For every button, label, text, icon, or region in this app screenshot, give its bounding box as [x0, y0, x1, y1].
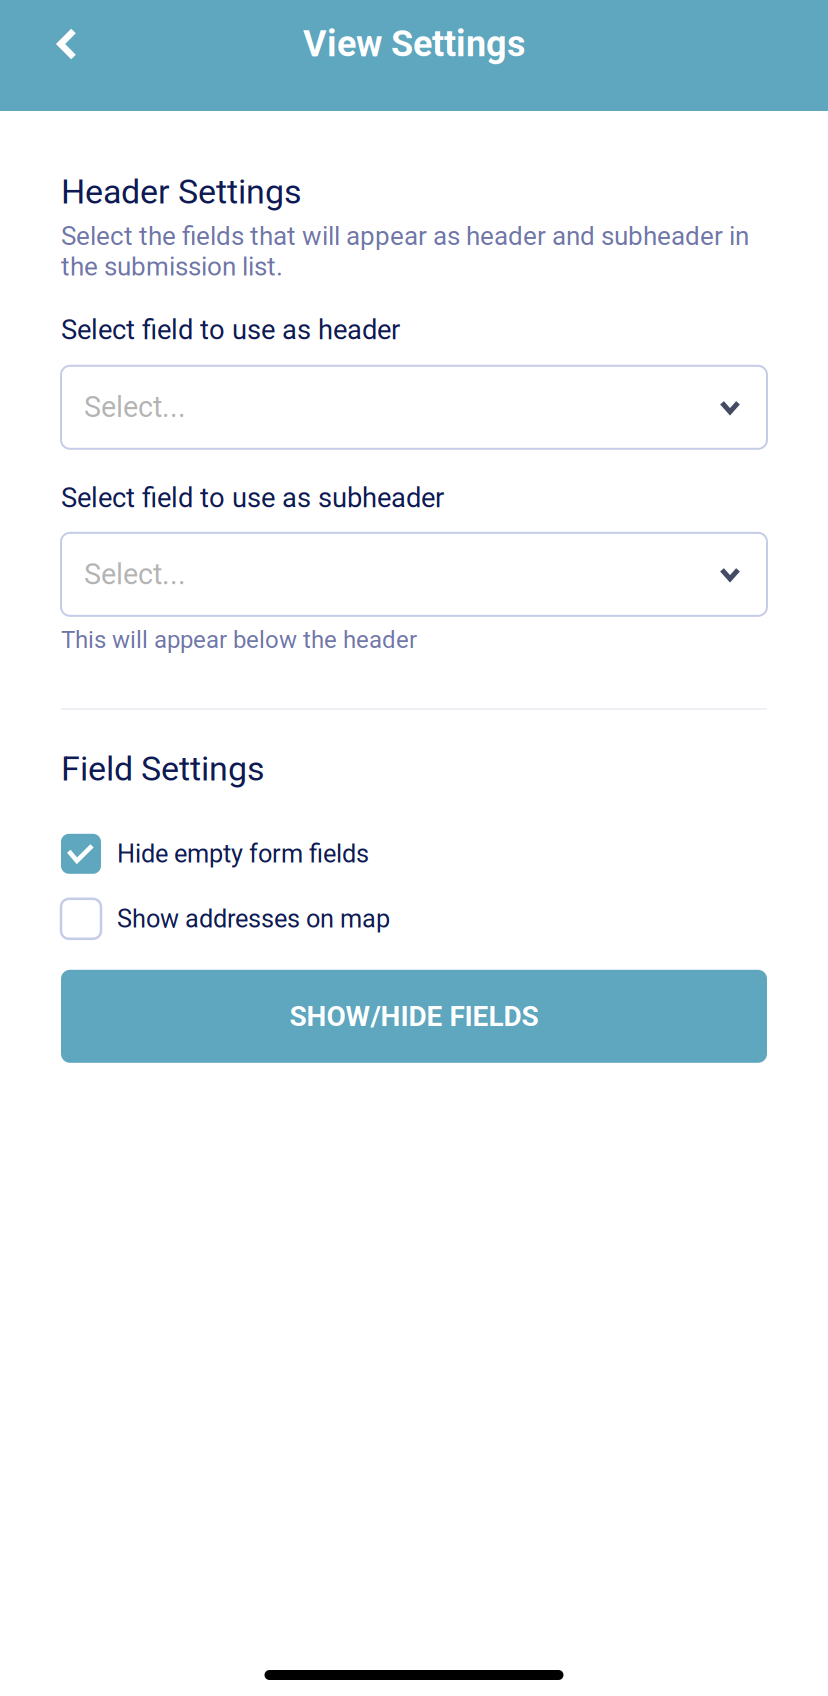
- button[interactable]: Show addresses on map: [61, 899, 767, 939]
- staticText: Show addresses on map: [117, 904, 390, 934]
- staticText: Header Settings: [61, 172, 302, 212]
- staticText: SHOW/HIDE FIELDS: [289, 1000, 538, 1033]
- staticText: Select...: [84, 390, 186, 424]
- staticText: Select the fields that will appear as he…: [61, 221, 749, 282]
- staticText: Hide empty form fields: [117, 839, 369, 869]
- staticText: This will appear below the header: [61, 626, 417, 654]
- button[interactable]: Select...: [61, 533, 767, 616]
- staticText: Select field to use as subheader: [61, 482, 444, 514]
- button[interactable]: Hide empty form fields: [61, 834, 767, 874]
- button[interactable]: SHOW/HIDE FIELDS: [61, 970, 767, 1063]
- staticText: Select...: [84, 557, 186, 591]
- staticText: Select field to use as header: [61, 314, 400, 346]
- button[interactable]: Back: [32, 9, 102, 79]
- staticText: Field Settings: [61, 749, 265, 789]
- button[interactable]: Select...: [61, 366, 767, 449]
- staticText: View Settings: [303, 23, 525, 65]
